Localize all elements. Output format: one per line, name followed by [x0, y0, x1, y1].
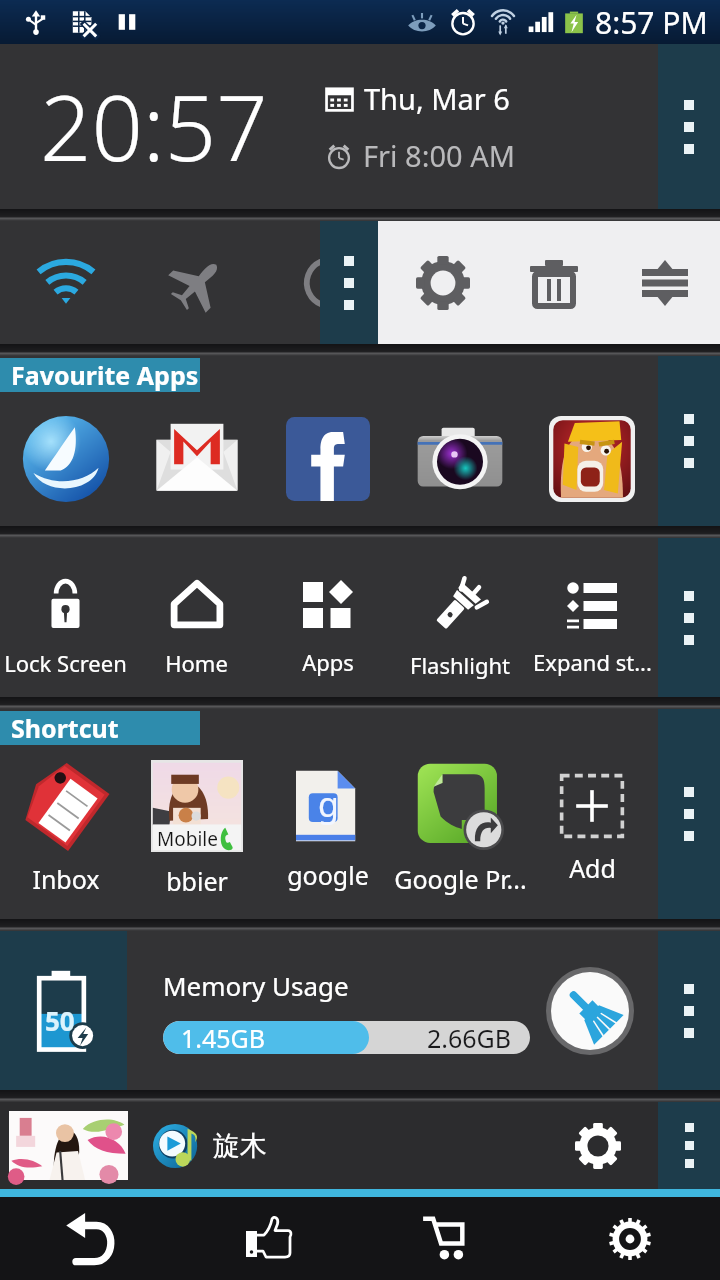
button[interactable]: Settings	[540, 1197, 720, 1280]
button[interactable]: Delete	[498, 221, 609, 344]
staticText: 50	[45, 1003, 75, 1038]
button[interactable]: Shortcut	[0, 711, 200, 745]
button[interactable]: More options	[320, 221, 378, 344]
button[interactable]: Notification settings	[568, 1116, 628, 1176]
button[interactable]: More options	[658, 1102, 720, 1189]
staticText: 旋木	[213, 1129, 267, 1163]
button[interactable]: Inbox	[0, 742, 131, 916]
staticText: Add	[569, 851, 616, 885]
button[interactable]: Sort	[609, 221, 720, 344]
button[interactable]	[526, 392, 658, 526]
staticText: Shortcut	[11, 711, 119, 745]
button[interactable]: Apps	[262, 548, 394, 707]
button[interactable]: More options	[658, 538, 720, 697]
button[interactable]	[262, 392, 394, 526]
button[interactable]: Clean memory	[551, 972, 629, 1050]
staticText: bbier	[166, 864, 228, 898]
button[interactable]: g	[262, 742, 394, 916]
button[interactable]: Google Pr...	[394, 742, 526, 916]
button[interactable]: Favourite Apps	[0, 358, 200, 392]
button[interactable]: Battery 50 percent	[0, 931, 127, 1090]
button[interactable]: Mobile	[131, 742, 262, 916]
button[interactable]: Back	[0, 1197, 180, 1280]
button[interactable]: Airplane mode	[132, 221, 264, 344]
button[interactable]: 20:57	[0, 44, 658, 209]
button[interactable]: Cart	[360, 1197, 540, 1280]
button[interactable]: Add	[526, 742, 658, 916]
staticText: Flashlight	[410, 650, 510, 680]
button[interactable]: Settings	[388, 221, 498, 344]
staticText: 2.66GB	[427, 1021, 512, 1054]
button[interactable]: More options	[658, 709, 720, 919]
button[interactable]: Auto rotate	[264, 221, 396, 344]
staticText: google	[287, 858, 369, 892]
staticText: Lock Screen	[4, 648, 127, 678]
button[interactable]: More options	[658, 356, 720, 526]
button[interactable]: Like	[180, 1197, 360, 1280]
staticText: Memory Usage	[163, 968, 349, 1003]
button[interactable]: Lock Screen	[0, 548, 131, 707]
button[interactable]: 旋木	[0, 1102, 658, 1189]
staticText: Mobile	[157, 826, 218, 852]
button[interactable]: More options	[658, 44, 720, 209]
staticText: Fri 8:00 AM	[363, 136, 515, 175]
button[interactable]: More options	[658, 931, 720, 1090]
staticText: 8:57 PM	[595, 2, 708, 43]
button[interactable]	[394, 392, 526, 526]
button[interactable]: Expand st...	[526, 548, 658, 707]
button[interactable]	[131, 392, 262, 526]
button[interactable]: Wi-Fi	[0, 221, 132, 344]
button[interactable]	[0, 392, 131, 526]
staticText: Expand st...	[533, 647, 652, 677]
staticText: Google Pr...	[394, 862, 526, 896]
staticText: g	[318, 781, 339, 827]
staticText: 20:57	[40, 65, 268, 188]
staticText: Inbox	[32, 862, 100, 896]
staticText: 1.45GB	[181, 1021, 266, 1054]
staticText: Home	[165, 648, 228, 678]
staticText: Favourite Apps	[11, 358, 199, 392]
button[interactable]: Flashlight	[394, 548, 526, 707]
button[interactable]: Home	[131, 548, 262, 707]
staticText: Thu, Mar 6	[364, 79, 510, 118]
staticText: Apps	[302, 647, 354, 677]
